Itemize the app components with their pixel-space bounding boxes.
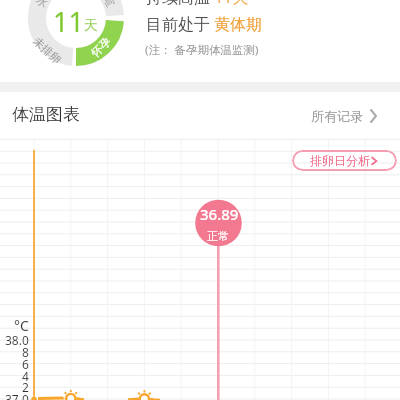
staticText: 4 (22, 368, 29, 384)
staticText: 6 (22, 356, 29, 372)
staticText: 36.89 (200, 204, 239, 224)
staticText: 2 (22, 379, 29, 395)
button[interactable]: 所有记录 (311, 104, 396, 128)
staticText: 高 (100, 0, 117, 10)
staticText: 所有记录 (311, 108, 363, 124)
staticText: °C (14, 316, 29, 335)
staticText: 水 (34, 0, 51, 10)
staticText: 正常 (207, 229, 229, 243)
staticText: 怀孕 (88, 34, 114, 60)
staticText: 体温图表 (12, 104, 80, 125)
staticText: 天 (84, 17, 98, 35)
staticText: 持续高温 11天 (146, 0, 249, 8)
staticText: 38.0 (5, 332, 29, 348)
staticText: 8 (22, 344, 29, 360)
staticText: 未排卵 (30, 34, 64, 67)
staticText: 排卵日分析 (310, 153, 370, 168)
button[interactable]: 排卵日分析 (292, 150, 397, 171)
staticText: 目前处于 黄体期 (146, 13, 263, 35)
staticText: 37.0 (5, 391, 29, 400)
staticText: (注： 备孕期体温监测) (145, 42, 259, 58)
staticText: 11 (53, 3, 84, 40)
